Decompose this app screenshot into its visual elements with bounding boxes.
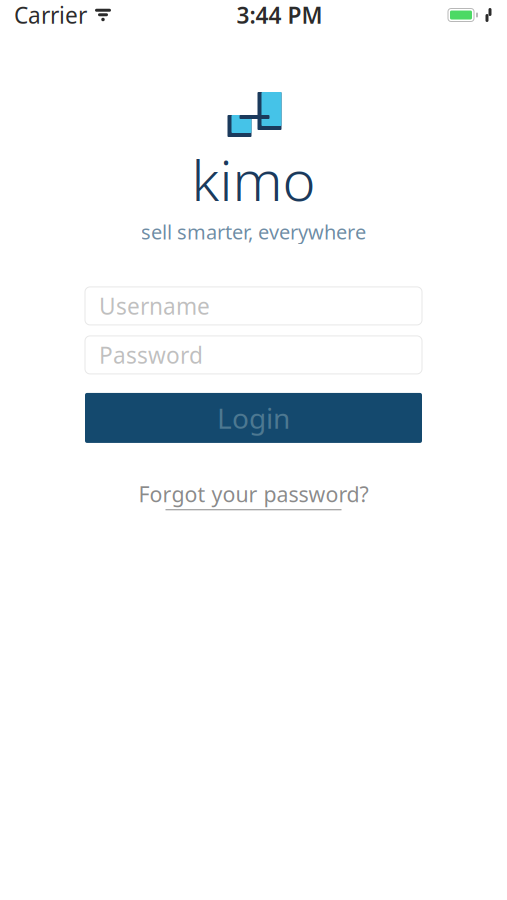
staticText: Username: [99, 291, 210, 321]
button[interactable]: Forgot your password?: [128, 476, 378, 514]
staticText: Login: [217, 399, 290, 436]
staticText: sell smarter, everywhere: [141, 218, 366, 245]
staticText: Forgot your password?: [138, 480, 368, 508]
staticText: kimo: [191, 142, 315, 216]
staticText: Password: [99, 340, 203, 370]
staticText: Carrier: [14, 0, 87, 30]
button[interactable]: Login: [85, 393, 422, 443]
staticText: 3:44 PM: [236, 0, 322, 30]
